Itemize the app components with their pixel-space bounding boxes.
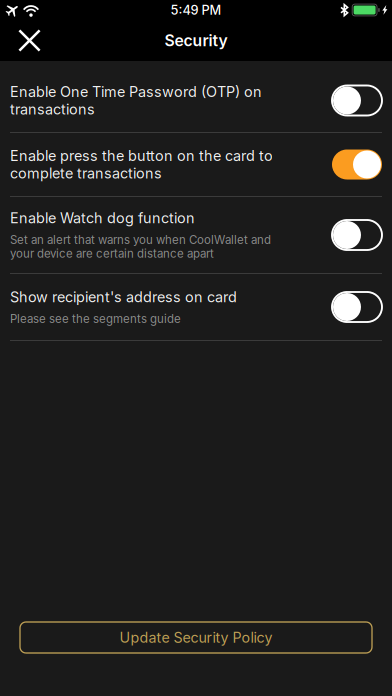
button[interactable]: Show recipient's address on card xyxy=(0,274,392,340)
staticText: Set an alert that warns you when CoolWal… xyxy=(10,233,271,260)
staticText: Show recipient's address on card xyxy=(10,288,237,306)
staticText: Update Security Policy xyxy=(119,629,272,646)
staticText: 5:49 PM xyxy=(170,2,221,18)
button[interactable]: Enable One Time Password (OTP) on transa… xyxy=(0,69,392,132)
staticText: Enable Watch dog function xyxy=(10,209,195,227)
staticText: Please see the segments guide xyxy=(10,312,181,326)
staticText: Enable press the button on the card to c… xyxy=(10,147,273,182)
staticText: Security xyxy=(164,31,227,50)
button[interactable]: Enable press the button on the card to c… xyxy=(0,133,392,196)
staticText: Enable One Time Password (OTP) on transa… xyxy=(10,83,262,118)
button[interactable]: Close xyxy=(0,21,57,60)
button[interactable]: Enable Watch dog function xyxy=(0,197,392,273)
button[interactable]: Update Security Policy xyxy=(20,622,372,653)
